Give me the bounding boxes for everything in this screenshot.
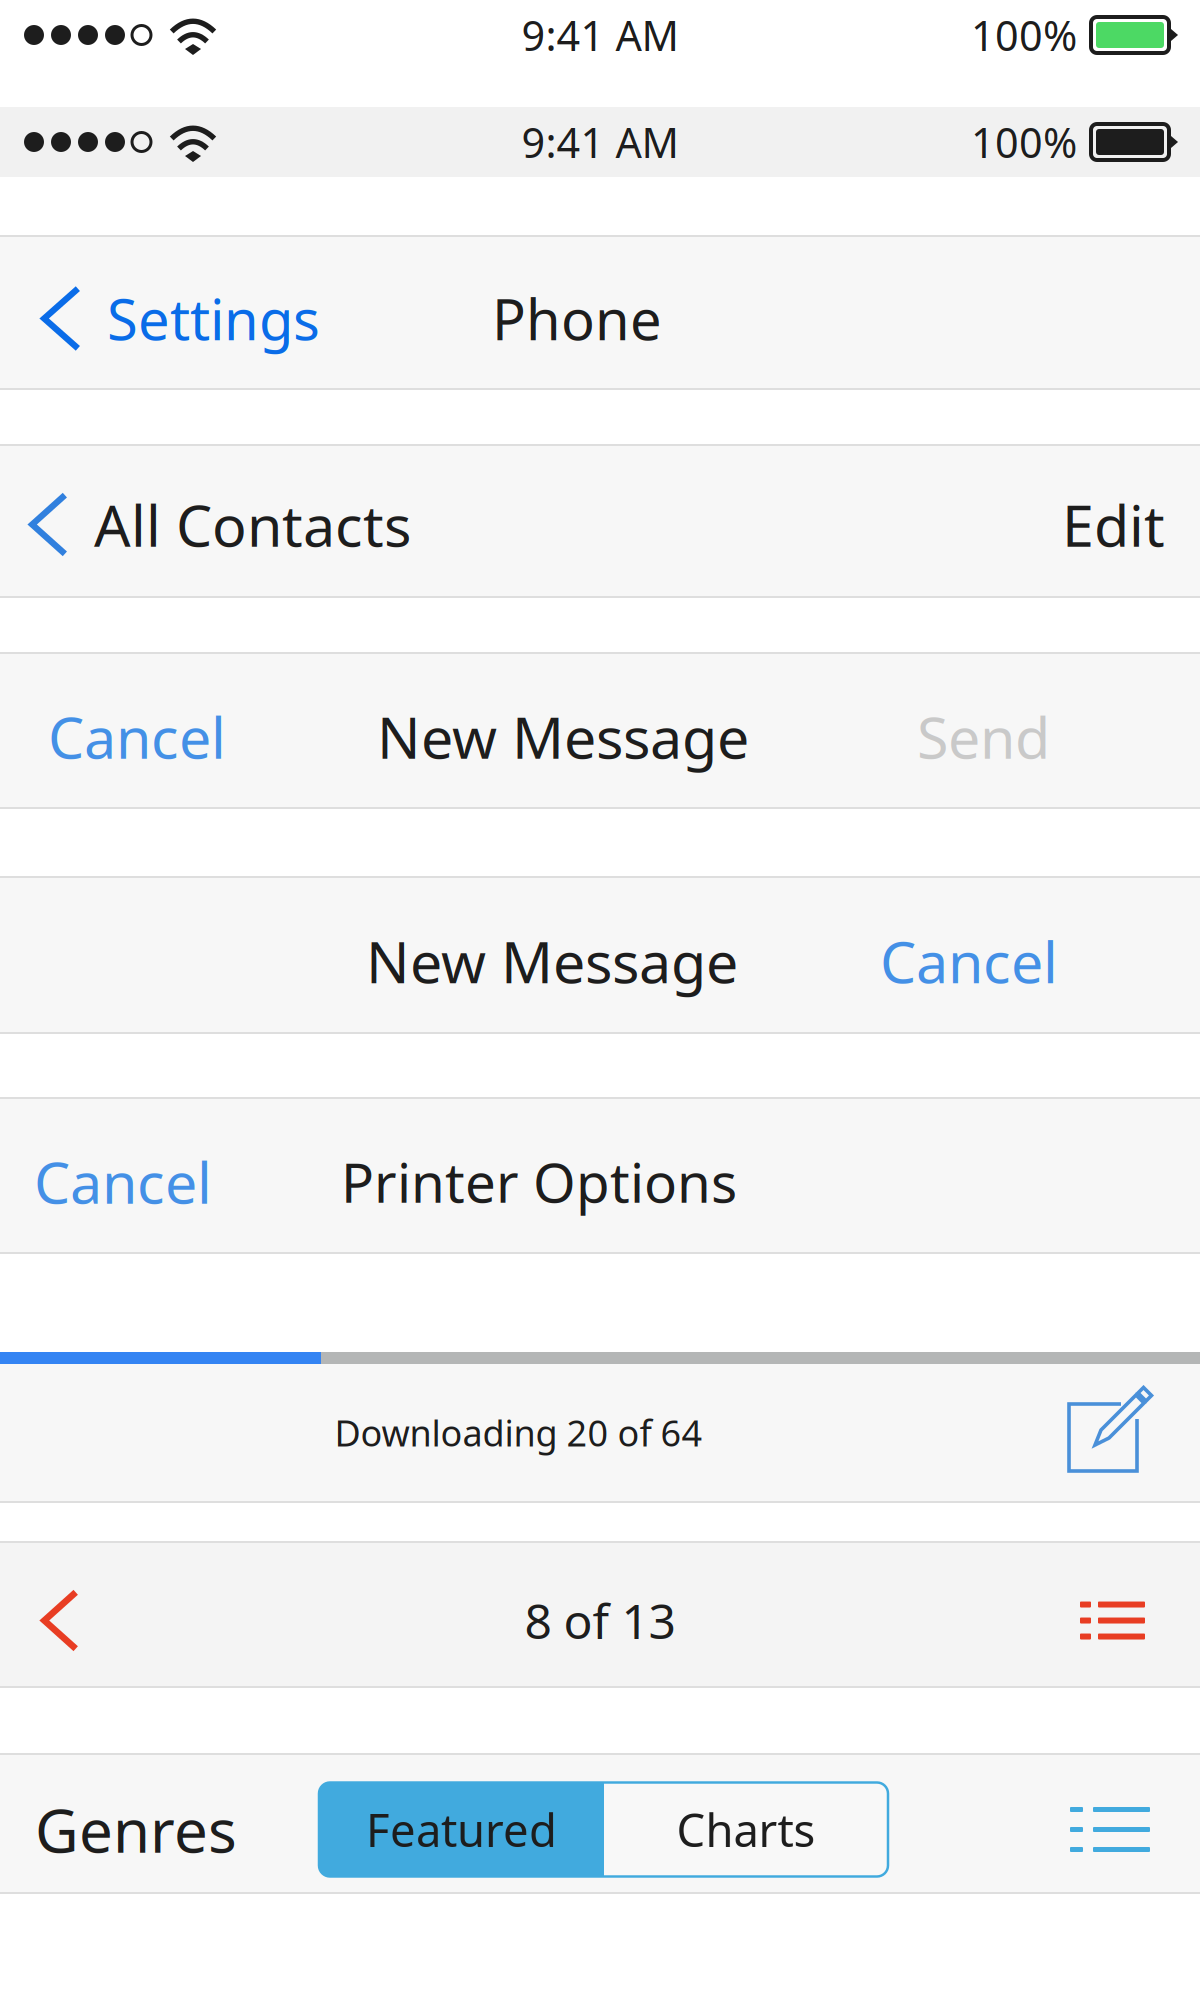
staticText: Downloading 20 of 64 bbox=[334, 1409, 702, 1456]
button[interactable]: Settings bbox=[0, 249, 344, 388]
staticText: 9:41 AM bbox=[521, 8, 678, 62]
staticText: Printer Options bbox=[341, 1145, 737, 1218]
button[interactable]: Featured bbox=[319, 1782, 604, 1876]
staticText: 100% bbox=[971, 115, 1077, 169]
staticText: 100% bbox=[971, 8, 1077, 62]
staticText: New Message bbox=[377, 698, 749, 774]
button[interactable]: List bbox=[1040, 1767, 1200, 1892]
button[interactable]: Cancel bbox=[0, 666, 256, 807]
staticText: Cancel bbox=[880, 923, 1058, 999]
button[interactable]: Cancel bbox=[850, 890, 1200, 1032]
button[interactable]: Compose bbox=[1037, 1364, 1176, 1501]
staticText: All Contacts bbox=[94, 486, 411, 562]
staticText: Featured bbox=[366, 1799, 557, 1860]
staticText: Cancel bbox=[48, 698, 226, 774]
button[interactable]: All Contacts bbox=[0, 453, 435, 596]
button[interactable]: Back bbox=[0, 1555, 109, 1686]
staticText: 8 of 13 bbox=[524, 1589, 675, 1652]
staticText: Edit bbox=[1062, 486, 1165, 562]
button[interactable]: Cancel bbox=[0, 1111, 242, 1252]
staticText: New Message bbox=[366, 923, 738, 999]
staticText: Cancel bbox=[34, 1143, 212, 1219]
button[interactable]: Charts bbox=[604, 1782, 888, 1876]
staticText: Settings bbox=[107, 281, 320, 356]
staticText: Phone bbox=[492, 281, 662, 356]
button[interactable]: Edit bbox=[1032, 453, 1200, 596]
staticText: 9:41 AM bbox=[521, 115, 678, 169]
button[interactable]: List bbox=[1050, 1555, 1200, 1686]
staticText: Send bbox=[917, 698, 1050, 774]
staticText: Charts bbox=[676, 1799, 815, 1860]
button[interactable]: Genres bbox=[0, 1767, 267, 1892]
button[interactable]: Send bbox=[887, 666, 1200, 807]
staticText: Genres bbox=[35, 1790, 237, 1869]
